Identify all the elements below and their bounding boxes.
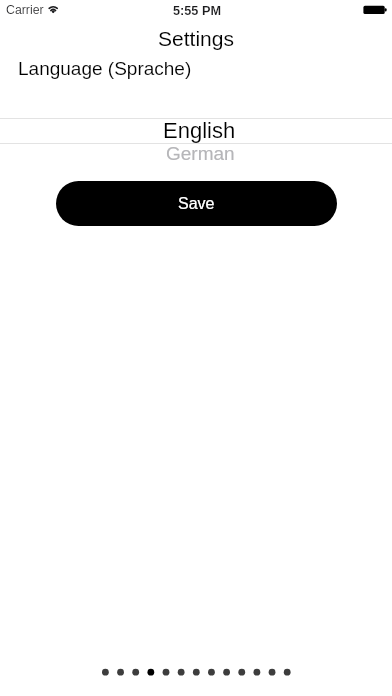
button[interactable]: English xyxy=(3,118,392,143)
button[interactable]: Save xyxy=(56,181,337,226)
staticText: Language (Sprache) xyxy=(18,58,192,79)
staticText: English xyxy=(163,118,236,143)
staticText: Settings xyxy=(158,27,234,50)
other: Wi-Fi signal xyxy=(46,3,60,15)
other: Page 4 of 13 xyxy=(0,664,392,680)
other: Battery full xyxy=(363,5,387,15)
staticText: 5:55 PM xyxy=(173,4,221,18)
staticText: Carrier xyxy=(6,3,44,17)
button[interactable]: German xyxy=(4,142,392,164)
staticText: Save xyxy=(178,195,215,213)
staticText: German xyxy=(166,143,235,164)
